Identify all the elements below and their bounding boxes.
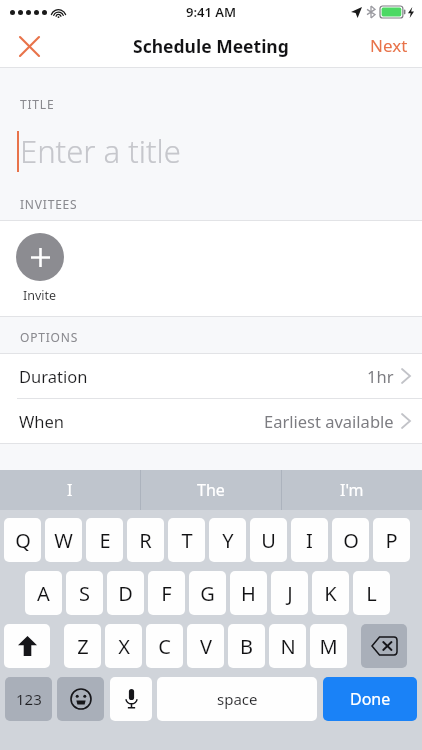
button[interactable]: B — [228, 624, 265, 668]
button[interactable]: U — [250, 518, 287, 562]
button[interactable]: Enter a title — [0, 120, 422, 182]
button[interactable]: L — [353, 571, 390, 615]
button[interactable]: X — [105, 624, 142, 668]
staticText: J — [287, 580, 293, 607]
staticText: When — [19, 410, 65, 432]
staticText: F — [161, 580, 172, 607]
staticText: U — [261, 527, 276, 554]
staticText: 123 — [16, 689, 42, 709]
button[interactable]: K — [312, 571, 349, 615]
staticText: Next — [370, 34, 408, 57]
staticText: 9:41 AM — [186, 3, 237, 21]
staticText: M — [319, 633, 338, 660]
button[interactable]: E — [86, 518, 123, 562]
button[interactable]: M — [310, 624, 347, 668]
staticText: K — [324, 580, 337, 607]
staticText: Y — [222, 527, 234, 554]
button[interactable]: Duration — [0, 354, 422, 398]
staticText: X — [118, 633, 130, 660]
button[interactable]: Y — [209, 518, 246, 562]
button[interactable]: H — [230, 571, 267, 615]
staticText: Done — [350, 688, 391, 710]
staticText: Z — [77, 633, 89, 660]
button[interactable]: T — [168, 518, 205, 562]
staticText: Duration — [19, 365, 88, 387]
staticText: S — [79, 580, 90, 607]
staticText: D — [118, 580, 133, 607]
staticText: N — [280, 633, 296, 660]
button[interactable]: G — [189, 571, 226, 615]
button[interactable]: A — [25, 571, 62, 615]
staticText: H — [241, 580, 256, 607]
button[interactable]: F — [148, 571, 185, 615]
button[interactable]: O — [332, 518, 369, 562]
button[interactable]: Dictate — [110, 677, 152, 721]
staticText: 1hr — [367, 365, 394, 387]
button[interactable]: V — [187, 624, 224, 668]
button[interactable]: When — [0, 399, 422, 443]
button[interactable]: space — [157, 677, 317, 721]
staticText: OPTIONS — [20, 329, 79, 345]
staticText: Schedule Meeting — [133, 34, 289, 58]
staticText: INVITEES — [20, 196, 78, 212]
staticText: C — [158, 633, 171, 660]
staticText: Earliest available — [264, 410, 394, 432]
button[interactable]: Invite — [16, 233, 64, 304]
button[interactable]: The — [141, 470, 281, 510]
button[interactable]: 123 — [5, 677, 52, 721]
staticText: P — [385, 527, 398, 554]
staticText: space — [217, 689, 258, 709]
button[interactable]: I'm — [282, 470, 422, 510]
button[interactable]: Emoji — [57, 677, 104, 721]
button[interactable]: I — [291, 518, 328, 562]
button[interactable]: Done — [323, 677, 417, 721]
staticText: I — [306, 527, 313, 554]
staticText: L — [366, 580, 377, 607]
staticText: I — [67, 479, 73, 501]
button[interactable]: Shift — [4, 624, 50, 668]
button[interactable]: D — [107, 571, 144, 615]
staticText: TITLE — [20, 96, 55, 112]
staticText: A — [37, 580, 50, 607]
staticText: I'm — [340, 479, 364, 501]
button[interactable]: W — [45, 518, 82, 562]
staticText: V — [200, 633, 212, 660]
staticText: Invite — [23, 287, 57, 304]
staticText: The — [197, 479, 225, 501]
button[interactable]: R — [127, 518, 164, 562]
button[interactable]: I — [0, 470, 140, 510]
button[interactable]: S — [66, 571, 103, 615]
button[interactable]: C — [146, 624, 183, 668]
staticText: G — [200, 580, 215, 607]
staticText: E — [99, 527, 111, 554]
button[interactable]: Next — [370, 34, 408, 57]
staticText: Enter a title — [20, 130, 181, 172]
staticText: T — [181, 527, 193, 554]
button[interactable]: Backspace — [361, 624, 407, 668]
button[interactable]: Close — [8, 25, 50, 67]
button[interactable]: N — [269, 624, 306, 668]
staticText: W — [54, 527, 73, 554]
button[interactable]: J — [271, 571, 308, 615]
button[interactable]: P — [373, 518, 410, 562]
button[interactable]: Z — [64, 624, 101, 668]
button[interactable]: Q — [4, 518, 41, 562]
staticText: R — [139, 527, 152, 554]
staticText: Q — [15, 527, 31, 554]
staticText: O — [343, 527, 359, 554]
staticText: B — [240, 633, 253, 660]
